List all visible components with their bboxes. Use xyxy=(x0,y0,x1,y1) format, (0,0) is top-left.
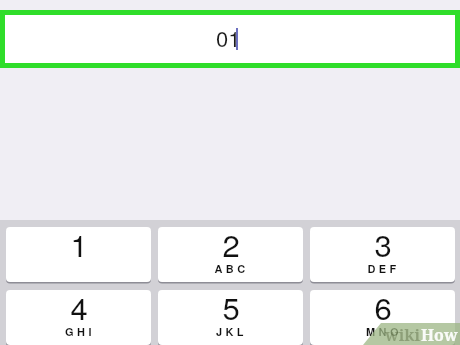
staticText: MNO xyxy=(366,324,402,340)
button[interactable]: 5 xyxy=(158,290,303,345)
button[interactable]: 1 xyxy=(6,227,151,282)
staticText: 4 xyxy=(70,290,88,328)
button[interactable]: 6 xyxy=(310,290,455,345)
staticText: DEF xyxy=(367,261,400,277)
staticText: JKL xyxy=(216,324,247,340)
button[interactable]: 3 xyxy=(310,227,455,282)
staticText: 01 xyxy=(216,22,241,54)
button[interactable]: 4 xyxy=(6,290,151,345)
staticText: 1 xyxy=(70,227,88,265)
staticText: 2 xyxy=(222,227,240,265)
staticText: 6 xyxy=(374,290,392,328)
staticText: wiki xyxy=(385,324,421,345)
staticText: GHI xyxy=(65,324,95,340)
staticText: ABC xyxy=(214,261,249,277)
button[interactable]: 2 xyxy=(158,227,303,282)
staticText: How xyxy=(421,324,458,345)
button[interactable]: 01 xyxy=(5,15,455,63)
staticText: 3 xyxy=(374,227,392,265)
staticText: 5 xyxy=(222,290,240,328)
